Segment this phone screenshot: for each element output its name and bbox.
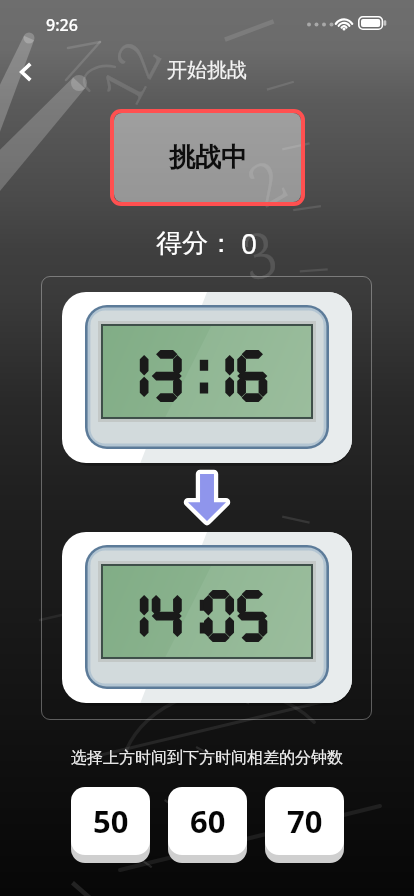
staticText: 9:26 (46, 14, 78, 36)
staticText: 选择上方时间到下方时间相差的分钟数 (71, 748, 343, 768)
button[interactable]: 返回 (2, 48, 50, 96)
staticText: 开始挑战 (167, 58, 247, 83)
staticText: 得分： (156, 227, 234, 260)
staticText: 挑战中 (169, 141, 247, 174)
button[interactable]: 50 (71, 787, 150, 863)
staticText: 70 (287, 800, 323, 842)
staticText: 3 (232, 209, 287, 299)
staticText: 2 (232, 139, 301, 224)
button[interactable]: 70 (265, 787, 344, 863)
button[interactable]: 60 (168, 787, 247, 863)
staticText: 0 (241, 224, 258, 262)
staticText: 12 (81, 26, 178, 118)
staticText: 60 (190, 800, 226, 842)
button[interactable]: 挑战中 (110, 109, 305, 206)
staticText: 50 (93, 800, 129, 842)
